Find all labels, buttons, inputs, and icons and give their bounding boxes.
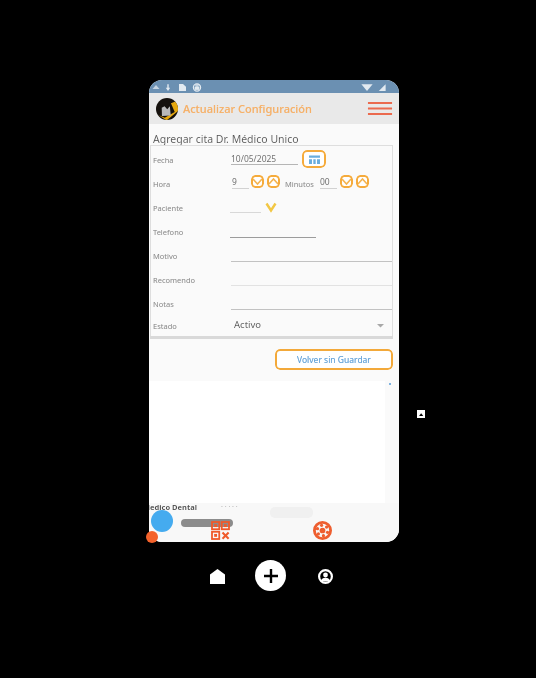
button[interactable] xyxy=(231,298,392,310)
staticText: Motivo xyxy=(153,251,178,261)
button[interactable]: 00 xyxy=(320,176,337,189)
button[interactable]: Disminuir xyxy=(251,175,264,188)
staticText: Notas xyxy=(153,299,174,309)
button[interactable]: Add xyxy=(255,560,286,591)
button[interactable]: 9 xyxy=(232,176,249,189)
staticText: 10/05/2025 xyxy=(231,153,277,165)
button[interactable]: Expandir paciente xyxy=(265,202,277,212)
staticText: Telefono xyxy=(153,227,184,237)
staticText: Hora xyxy=(153,179,171,189)
staticText: · · · · · xyxy=(221,502,238,512)
button[interactable]: Activo xyxy=(234,318,384,332)
staticText: Paciente xyxy=(153,203,184,213)
staticText: Actualizar Configuración xyxy=(183,101,312,116)
button[interactable] xyxy=(230,226,316,238)
button[interactable] xyxy=(231,274,392,286)
staticText: Fecha xyxy=(153,155,174,165)
button[interactable]: Menu xyxy=(366,98,392,119)
staticText: Recomendo xyxy=(153,275,196,285)
staticText: Agregar cita Dr. Médico Unico xyxy=(153,132,299,146)
staticText: Volver sin Guardar xyxy=(297,354,371,366)
staticText: Estado xyxy=(153,321,177,331)
button[interactable]: 10/05/2025 xyxy=(231,153,298,165)
button[interactable] xyxy=(230,201,261,213)
staticText: Medico Dental xyxy=(149,502,197,512)
button[interactable]: Seleccionar fecha xyxy=(302,150,326,168)
button[interactable]: Profile xyxy=(310,561,340,591)
staticText: 9 xyxy=(232,176,237,188)
button[interactable]: Home xyxy=(202,561,232,591)
staticText: Minutos xyxy=(285,179,314,189)
button[interactable]: Aumentar xyxy=(267,175,280,188)
staticText: 00 xyxy=(320,176,330,188)
button[interactable]: Volver sin Guardar xyxy=(275,349,393,370)
button[interactable]: Disminuir xyxy=(340,175,353,188)
staticText: Activo xyxy=(234,318,262,331)
button[interactable] xyxy=(231,250,392,262)
button[interactable]: Aumentar xyxy=(356,175,369,188)
